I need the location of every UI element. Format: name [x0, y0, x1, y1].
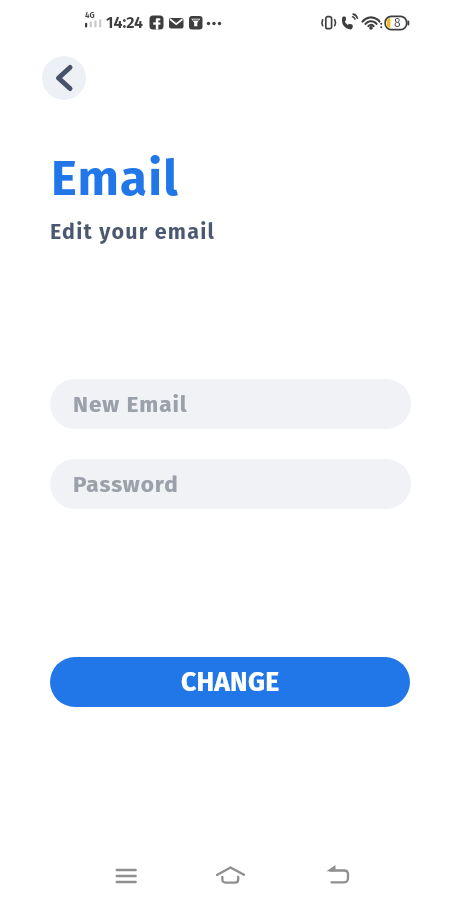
button[interactable]	[42, 56, 86, 100]
staticText: 8	[394, 16, 401, 30]
staticText: Password	[73, 471, 179, 498]
staticText: Email	[51, 149, 179, 208]
button[interactable]: New Email	[50, 379, 411, 429]
button[interactable]	[210, 856, 250, 896]
staticText: 14:24	[106, 13, 144, 32]
button[interactable]	[318, 856, 358, 896]
button[interactable]	[106, 856, 146, 896]
button[interactable]: Password	[50, 459, 411, 509]
staticText: CHANGE	[181, 666, 280, 698]
staticText: 4G	[85, 11, 95, 21]
staticText: Edit your email	[50, 219, 216, 245]
button[interactable]: CHANGE	[50, 657, 410, 707]
staticText: New Email	[73, 391, 188, 418]
